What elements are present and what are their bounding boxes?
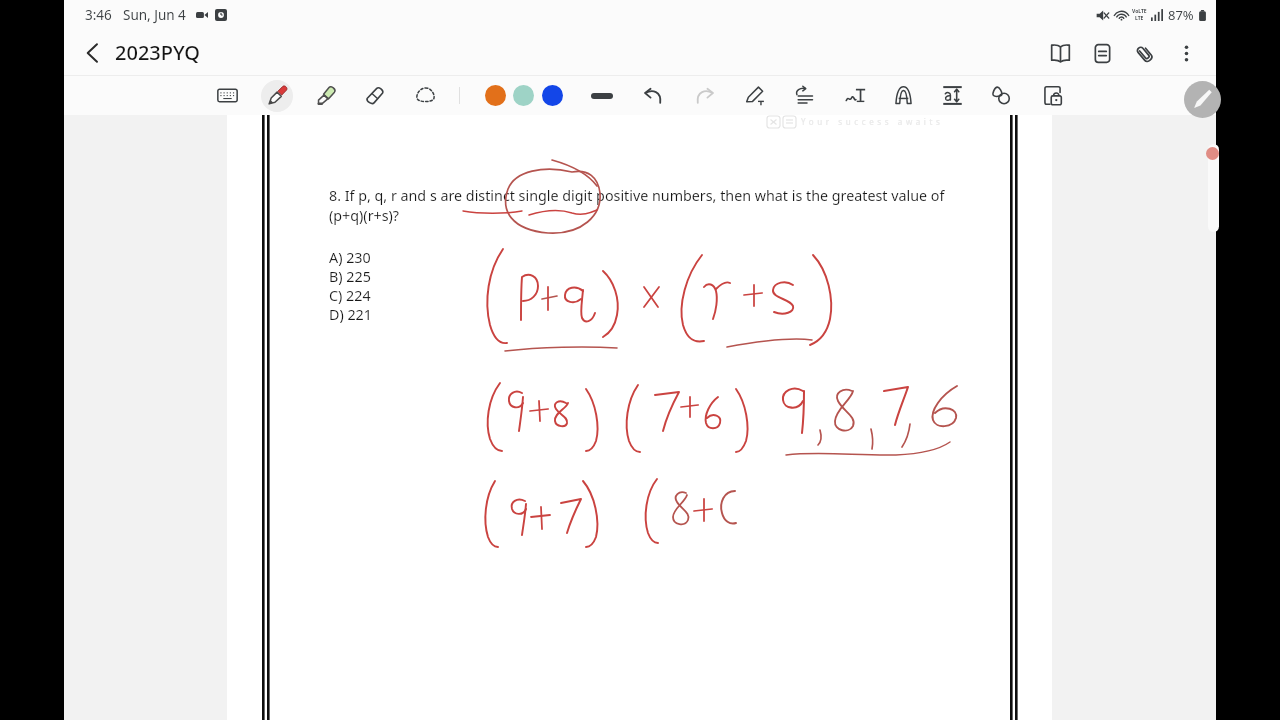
- button[interactable]: Back: [73, 33, 113, 73]
- staticText: Your success awaits: [801, 116, 944, 127]
- button[interactable]: Colour: [481, 76, 509, 115]
- staticText: 2023PYQ: [115, 39, 200, 66]
- staticText: (p+q)(r+s)?: [329, 206, 400, 225]
- staticText: VoLTE: [1132, 8, 1147, 15]
- button[interactable]: Lock: [1032, 76, 1072, 115]
- button[interactable]: Attach: [1123, 32, 1165, 74]
- button[interactable]: More options: [1165, 32, 1207, 74]
- button[interactable]: Stroke width: [581, 76, 623, 115]
- staticText: 3:46: [85, 6, 112, 24]
- button[interactable]: Undo: [633, 76, 673, 115]
- button[interactable]: Pen: [257, 76, 297, 115]
- button[interactable]: Selection: [405, 76, 445, 115]
- staticText: C) 224: [329, 286, 371, 305]
- button[interactable]: Pen: [1184, 81, 1221, 118]
- staticText: 87%: [1168, 6, 1194, 24]
- button[interactable]: Text convert: [835, 76, 875, 115]
- staticText: Sun, Jun 4: [123, 6, 186, 24]
- button[interactable]: Notes: [1081, 32, 1123, 74]
- staticText: 8. If p, q, r and s are distinct single …: [329, 186, 945, 205]
- button[interactable]: Reading mode: [1039, 32, 1081, 74]
- button[interactable]: Pen settings: [735, 76, 775, 115]
- button[interactable]: Colour: [509, 76, 537, 115]
- button[interactable]: Redo: [684, 76, 724, 115]
- button[interactable]: Shape recognize: [883, 76, 923, 115]
- button[interactable]: Keyboard: [207, 76, 247, 115]
- button[interactable]: Colour: [538, 76, 566, 115]
- button[interactable]: Eraser: [355, 76, 395, 115]
- staticText: B) 225: [329, 267, 371, 286]
- staticText: LTE: [1135, 15, 1144, 22]
- staticText: D) 221: [329, 305, 372, 324]
- staticText: A) 230: [329, 248, 371, 267]
- button[interactable]: Shapes: [981, 76, 1021, 115]
- button[interactable]: Spacing: [932, 76, 972, 115]
- button[interactable]: Paragraph: [784, 76, 824, 115]
- button[interactable]: Highlighter: [306, 76, 346, 115]
